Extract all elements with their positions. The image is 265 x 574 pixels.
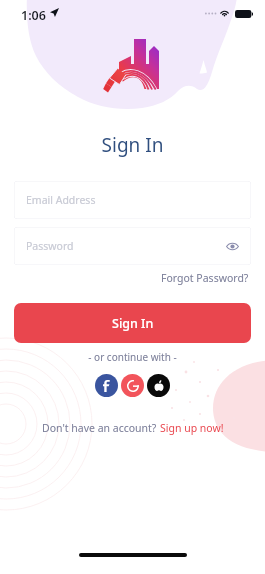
button[interactable]: Sign in with Apple <box>147 374 170 397</box>
button[interactable]: Password <box>14 227 251 265</box>
staticText: Password <box>26 239 74 253</box>
staticText: Don't have an account? <box>42 421 160 435</box>
button[interactable]: Forgot Password? <box>160 269 250 287</box>
button[interactable]: Sign in with Google <box>121 374 144 397</box>
staticText: 1:06 <box>21 7 46 24</box>
button[interactable]: Sign In <box>14 303 251 343</box>
staticText: Email Address <box>26 193 96 207</box>
button[interactable]: Sign in with Facebook <box>95 374 118 397</box>
staticText: Sign In <box>0 132 265 158</box>
staticText: Sign In <box>112 315 154 332</box>
staticText: Sign up now! <box>160 421 224 435</box>
staticText: Forgot Password? <box>161 271 249 285</box>
staticText: - or continue with - <box>0 350 265 364</box>
button[interactable]: Sign up now! <box>160 421 224 435</box>
button[interactable]: Email Address <box>14 181 251 219</box>
button[interactable]: Show password <box>222 236 242 256</box>
